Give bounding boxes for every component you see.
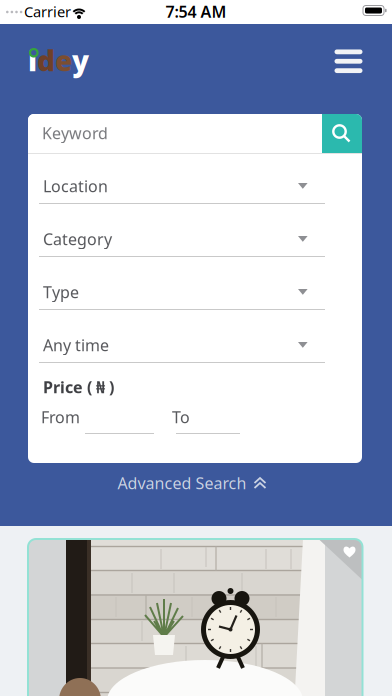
staticText: d	[37, 42, 55, 79]
staticText: e	[55, 42, 72, 79]
button[interactable]: Any time	[28, 318, 362, 371]
staticText: Location	[43, 175, 108, 197]
staticText: Category	[43, 228, 112, 250]
staticText: Price ( ₦ )	[43, 376, 114, 398]
staticText: y	[72, 42, 89, 79]
button[interactable]: Search	[322, 114, 362, 153]
button[interactable]: Favourite	[343, 546, 355, 557]
staticText: Any time	[43, 334, 109, 356]
button[interactable]: Menu	[334, 49, 362, 73]
button[interactable]: Type	[28, 265, 362, 318]
button[interactable]: Location	[28, 159, 362, 212]
staticText: 7:54 AM	[165, 1, 226, 22]
staticText: Advanced Search	[117, 472, 246, 494]
button[interactable]: Maximum price	[176, 410, 240, 434]
button[interactable]: Listing	[28, 539, 362, 696]
staticText: Type	[43, 281, 79, 303]
staticText: Keyword	[42, 122, 108, 144]
button[interactable]: Advanced Search	[117, 472, 266, 494]
button[interactable]: Category	[28, 212, 362, 265]
staticText: i	[28, 42, 37, 79]
staticText: To	[172, 406, 190, 428]
button[interactable]: Keyword	[28, 114, 322, 153]
button[interactable]: Minimum price	[85, 410, 154, 434]
button[interactable]: idey home	[28, 47, 86, 74]
staticText: Carrier	[24, 2, 71, 21]
staticText: From	[41, 406, 80, 428]
